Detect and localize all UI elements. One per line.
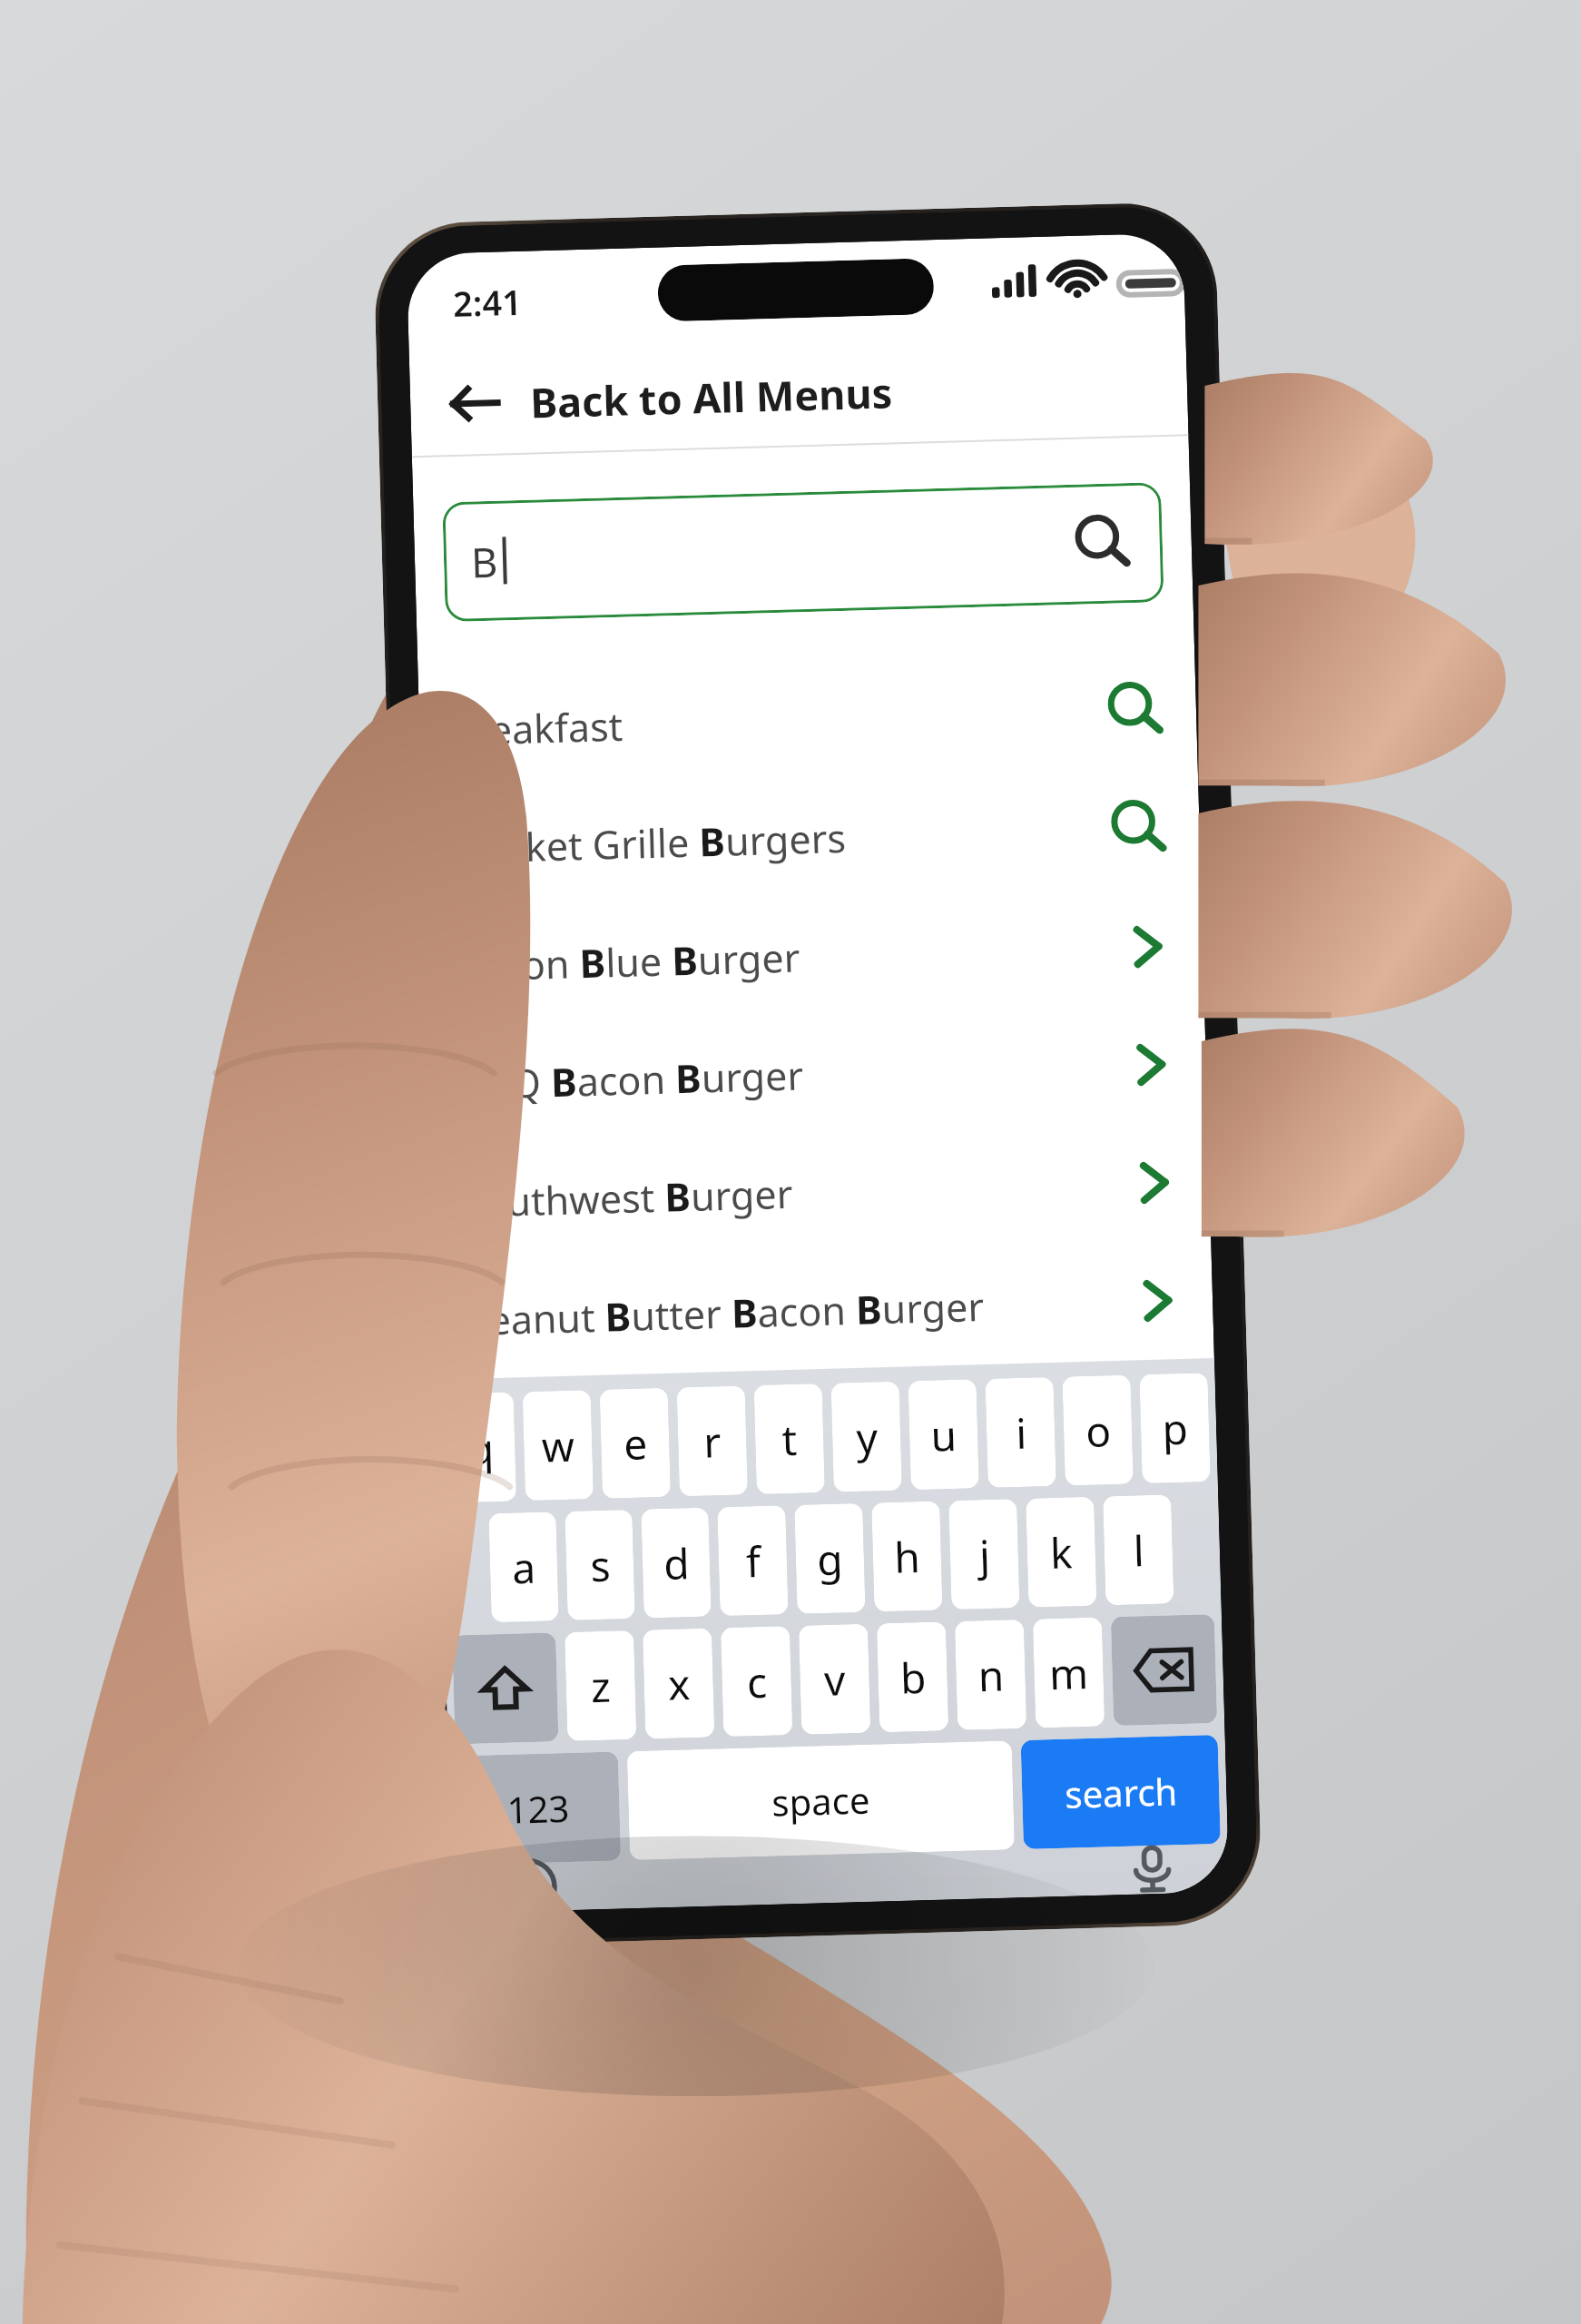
button[interactable]: Market Grille Burgers: [421, 768, 1201, 908]
staticText: t: [781, 1411, 798, 1468]
button[interactable]: i: [985, 1377, 1056, 1488]
button[interactable]: Search: [1058, 498, 1149, 589]
button[interactable]: u: [908, 1379, 979, 1490]
staticText: Breakfast: [448, 699, 624, 757]
button[interactable]: j: [949, 1499, 1020, 1610]
staticText: s: [589, 1537, 612, 1594]
button[interactable]: Peanut Butter Bacon Burger: [434, 1240, 1214, 1380]
staticText: l: [1133, 1522, 1145, 1579]
staticText: g: [816, 1530, 844, 1588]
staticText: x: [667, 1655, 691, 1713]
button[interactable]: r: [677, 1386, 748, 1496]
button[interactable]: v: [799, 1624, 871, 1735]
staticText: Bacon Blue Burger: [454, 930, 801, 993]
staticText: p: [1161, 1400, 1189, 1458]
button[interactable]: Southwest Burger: [431, 1122, 1211, 1262]
button[interactable]: o: [1062, 1375, 1133, 1486]
button[interactable]: Shift: [452, 1633, 559, 1744]
button[interactable]: d: [641, 1508, 711, 1618]
staticText: Back to All Menus: [529, 364, 894, 430]
staticText: i: [1015, 1404, 1027, 1462]
button[interactable]: b: [877, 1622, 949, 1732]
staticText: b: [899, 1648, 927, 1706]
staticText: u: [930, 1406, 957, 1464]
staticText: a: [511, 1539, 536, 1596]
button[interactable]: Backspace: [1111, 1614, 1217, 1726]
button[interactable]: l: [1103, 1495, 1174, 1605]
button[interactable]: e: [600, 1388, 671, 1499]
staticText: c: [746, 1653, 768, 1711]
staticText: Southwest Burger: [461, 1166, 794, 1229]
staticText: space: [771, 1775, 870, 1826]
staticText: 2:41: [452, 278, 523, 327]
button[interactable]: k: [1026, 1497, 1097, 1607]
staticText: k: [1049, 1524, 1073, 1582]
button[interactable]: q: [445, 1392, 516, 1503]
staticText: Market Grille Burgers: [451, 811, 847, 875]
button[interactable]: p: [1139, 1373, 1210, 1483]
button[interactable]: Emoji keyboard: [488, 1862, 569, 1912]
button[interactable]: z: [565, 1630, 637, 1741]
staticText: z: [590, 1657, 611, 1715]
button[interactable]: h: [871, 1501, 943, 1612]
button[interactable]: s: [565, 1510, 635, 1620]
button[interactable]: space: [627, 1741, 1015, 1860]
button[interactable]: n: [955, 1619, 1027, 1730]
staticText: m: [1048, 1644, 1089, 1702]
button[interactable]: search: [1021, 1735, 1221, 1849]
staticText: o: [1085, 1402, 1112, 1460]
button[interactable]: c: [721, 1626, 793, 1737]
button[interactable]: Back: [431, 359, 519, 447]
button[interactable]: Dictate: [1112, 1844, 1193, 1895]
staticText: e: [623, 1415, 648, 1473]
staticText: r: [703, 1413, 722, 1470]
button[interactable]: t: [754, 1384, 825, 1494]
button[interactable]: m: [1033, 1617, 1105, 1728]
button[interactable]: Breakfast: [418, 650, 1198, 790]
staticText: y: [855, 1408, 879, 1466]
staticText: j: [978, 1526, 991, 1583]
button[interactable]: BBQ Bacon Burger: [428, 1004, 1208, 1144]
button[interactable]: g: [794, 1503, 865, 1614]
button[interactable]: B: [442, 482, 1164, 622]
button[interactable]: y: [831, 1381, 902, 1492]
staticText: BBQ Bacon Burger: [458, 1048, 805, 1111]
staticText: w: [540, 1417, 576, 1475]
staticText: f: [745, 1532, 761, 1590]
staticText: 123: [506, 1783, 570, 1834]
staticText: v: [823, 1651, 846, 1709]
staticText: h: [893, 1528, 921, 1586]
staticText: d: [663, 1534, 690, 1592]
button[interactable]: x: [643, 1628, 715, 1739]
button[interactable]: 123: [455, 1752, 621, 1865]
staticText: B: [470, 533, 499, 590]
staticText: Peanut Butter Bacon Burger: [464, 1279, 985, 1347]
staticText: n: [977, 1646, 1005, 1704]
button[interactable]: w: [522, 1390, 594, 1501]
button[interactable]: a: [489, 1512, 559, 1622]
button[interactable]: Bacon Blue Burger: [424, 886, 1204, 1026]
staticText: search: [1064, 1766, 1178, 1818]
staticText: q: [467, 1419, 495, 1477]
button[interactable]: f: [717, 1505, 788, 1616]
